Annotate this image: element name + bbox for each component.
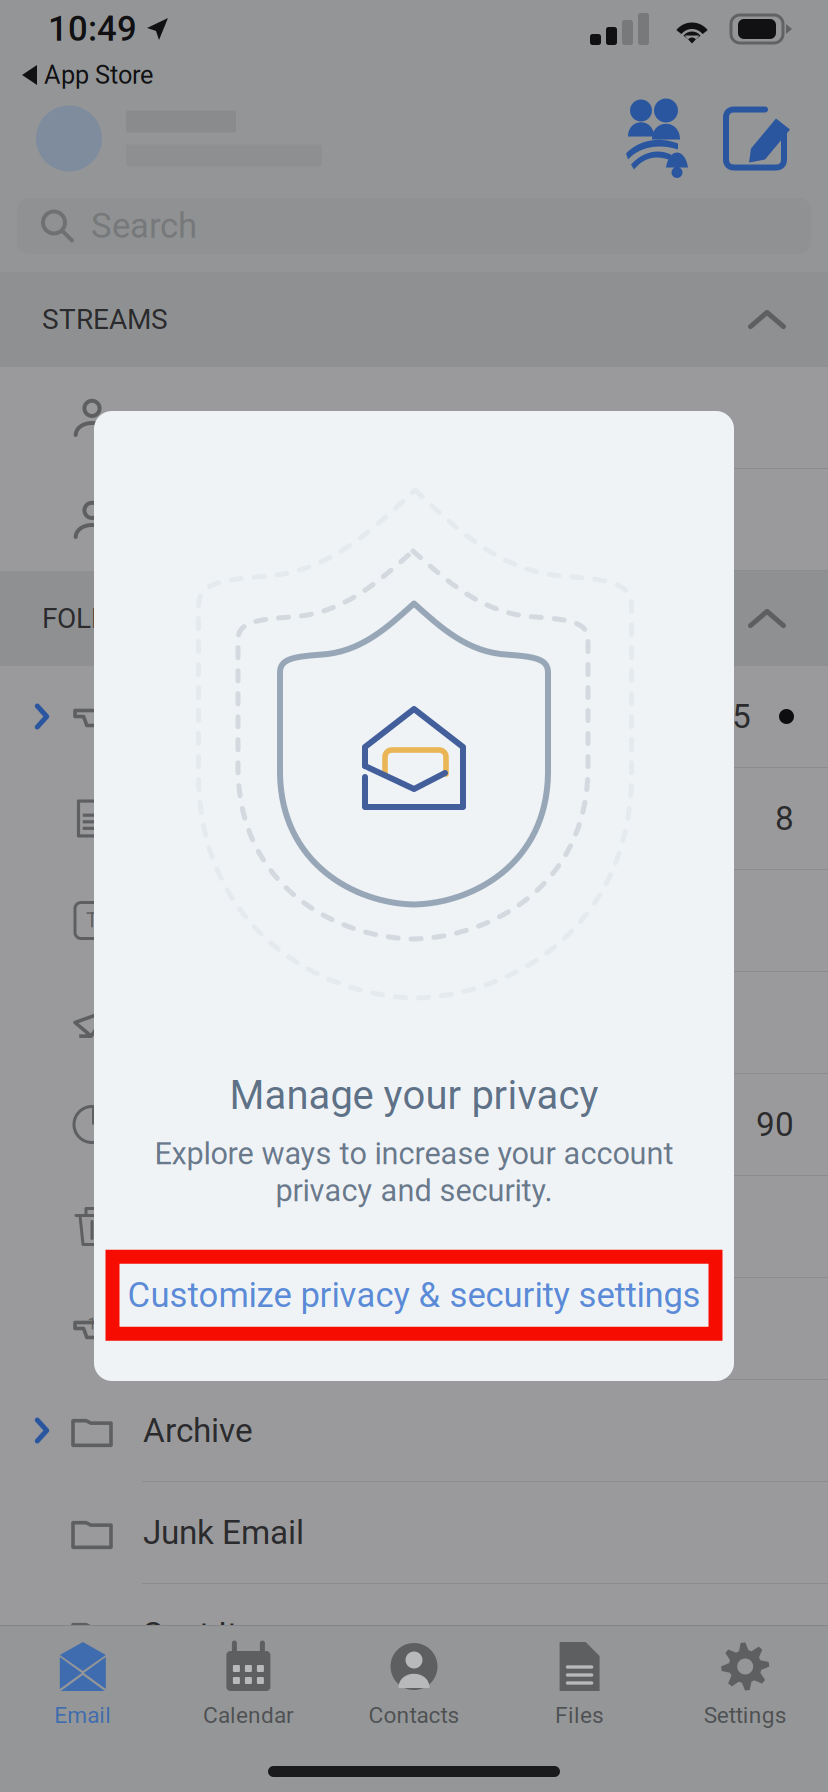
staticText: Manage your privacy [229,1072,598,1119]
button[interactable]: Settings [662,1626,828,1738]
button[interactable]: Drafts [0,768,828,870]
button[interactable]: T [0,870,828,972]
button[interactable]: Email [0,1626,166,1738]
staticText: Email [54,1702,111,1729]
button[interactable]: Junk Email [0,1482,828,1584]
staticText: Calendar [203,1702,294,1729]
staticText: STREAMS [42,303,168,336]
staticText: Customize privacy & security settings [127,1275,700,1315]
button[interactable]: Inbox [0,666,828,768]
staticText: Contacts [368,1702,459,1729]
button[interactable] [0,1074,828,1176]
button[interactable]: Sent Items [0,1584,828,1686]
button[interactable]: 1 [0,1278,828,1380]
staticText: 90 [756,1105,794,1144]
button[interactable]: Compose [706,92,810,185]
staticText: Settings [704,1702,787,1729]
staticText: FOLDERS [42,602,159,635]
button[interactable]: Customize privacy & security settings [105,1250,722,1341]
button[interactable]: Files [497,1626,662,1738]
staticText: 8 [775,799,794,838]
staticText: 115 [694,697,751,736]
staticText: App Store [44,60,153,90]
staticText: T [86,909,98,932]
staticText: Sent Items [143,1615,302,1654]
button[interactable]: Archive [0,1380,828,1482]
button[interactable]: FOLDERS [0,571,828,666]
staticText: 1 [87,1315,96,1333]
staticText: Explore ways to increase your account [154,1136,673,1172]
button[interactable] [0,367,828,469]
staticText: privacy and security. [275,1173,552,1209]
button[interactable]: STREAMS [0,272,828,367]
staticText: 10:49 [48,9,137,49]
button[interactable] [0,1176,828,1278]
button[interactable]: Contacts [331,1626,497,1738]
staticText: Files [555,1702,604,1729]
button[interactable]: Search [0,185,828,272]
button[interactable]: Contacts and notifications [610,92,706,185]
staticText: Junk Email [143,1513,304,1552]
button[interactable]: Calendar [166,1626,331,1738]
button[interactable] [0,469,828,571]
button[interactable] [0,972,828,1074]
staticText: Search [91,206,197,246]
staticText: Archive [143,1411,253,1450]
button[interactable] [0,92,610,185]
